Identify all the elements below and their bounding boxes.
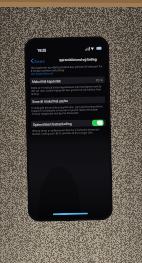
staticText: Batteri [34,58,45,63]
staticText: Evne til maksimal ytelse [32,99,68,104]
button[interactable]: Optimalisert batterilading på [92,119,104,126]
button[interactable]: Evne til maksimal ytelse [30,96,105,105]
staticText: Batteritilstand og lading [59,57,97,62]
staticText: Optimalisert batterilading [33,122,72,127]
staticText: Dette er et mål på batterikapasiteten sa… [31,84,104,95]
button[interactable]: Om batteritilstand [31,71,54,76]
button[interactable]: Batteri [29,57,46,64]
staticText: 85 % [96,78,103,82]
staticText: iPhone lærer av ladevanene dine for å fo… [32,127,105,135]
staticText: Hvis batteriet har dårlig tilstand kan y… [31,64,104,72]
staticText: Innebygde dynamiske programvare- og mask… [31,104,105,115]
staticText: Maksimal kapasitet [32,79,61,84]
button[interactable]: Maksimal kapasitet [30,76,105,85]
button[interactable]: Optimalisert batterilading [31,119,106,128]
staticText: 19:25 [37,47,46,53]
